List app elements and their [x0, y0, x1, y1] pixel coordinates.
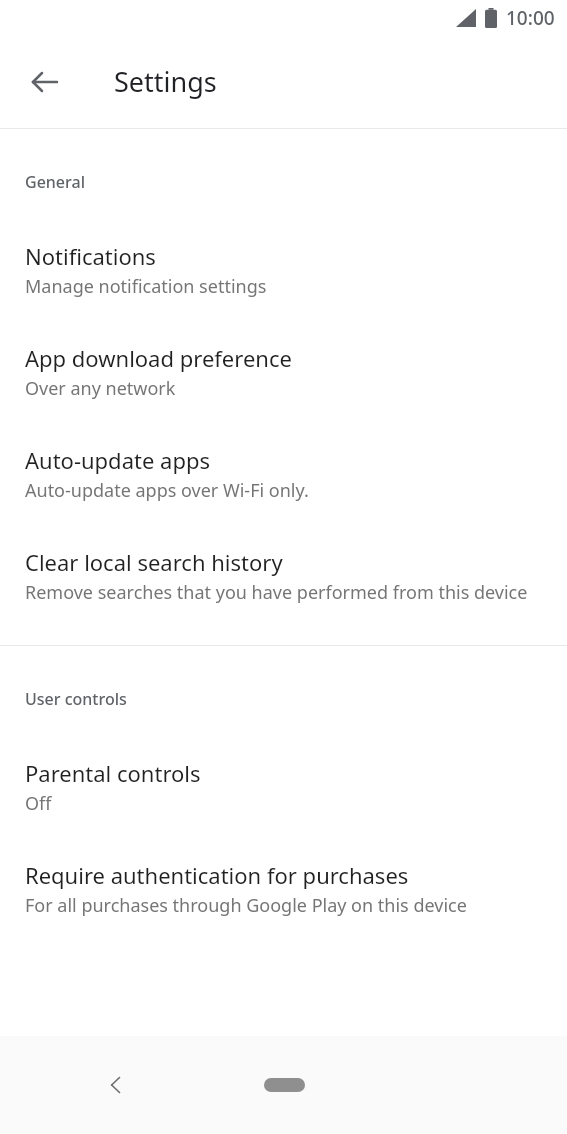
- button[interactable]: Parental controls: [0, 758, 567, 816]
- staticText: Over any network: [25, 376, 176, 401]
- staticText: Auto-update apps over Wi-Fi only.: [25, 478, 309, 503]
- staticText: Auto-update apps: [25, 445, 210, 475]
- staticText: Clear local search history: [25, 547, 283, 577]
- staticText: Manage notification settings: [25, 274, 267, 299]
- button[interactable]: Home: [248, 1061, 320, 1109]
- staticText: For all purchases through Google Play on…: [25, 893, 467, 918]
- button[interactable]: Auto-update apps: [0, 445, 567, 503]
- button[interactable]: Notifications: [0, 241, 567, 299]
- staticText: Remove searches that you have performed …: [25, 580, 528, 605]
- staticText: Notifications: [25, 241, 156, 271]
- staticText: 10:00: [506, 5, 555, 31]
- staticText: Require authentication for purchases: [25, 860, 409, 890]
- staticText: Settings: [114, 63, 217, 100]
- staticText: App download preference: [25, 343, 292, 373]
- button[interactable]: Require authentication for purchases: [0, 860, 567, 918]
- button[interactable]: App download preference: [0, 343, 567, 401]
- staticText: Parental controls: [25, 758, 201, 788]
- button[interactable]: Back: [13, 50, 77, 114]
- button[interactable]: Back: [86, 1055, 146, 1115]
- button[interactable]: Clear local search history: [0, 547, 567, 605]
- staticText: General: [25, 171, 85, 193]
- staticText: User controls: [25, 688, 127, 710]
- staticText: Off: [25, 791, 52, 816]
